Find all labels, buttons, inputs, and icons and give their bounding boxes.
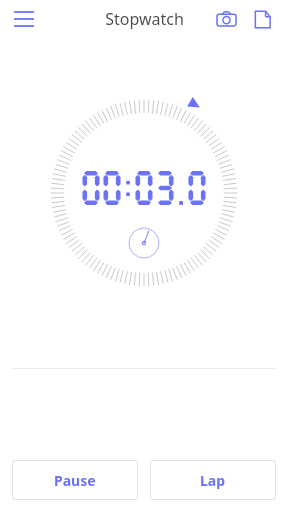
staticText: Stopwatch: [105, 8, 184, 30]
button[interactable]: Lap: [150, 460, 276, 500]
button[interactable]: Laps: [246, 3, 278, 35]
staticText: Pause: [54, 471, 96, 490]
button[interactable]: Camera: [210, 3, 242, 35]
staticText: Lap: [200, 471, 226, 490]
button[interactable]: Pause: [12, 460, 138, 500]
button[interactable]: Menu: [8, 3, 40, 35]
